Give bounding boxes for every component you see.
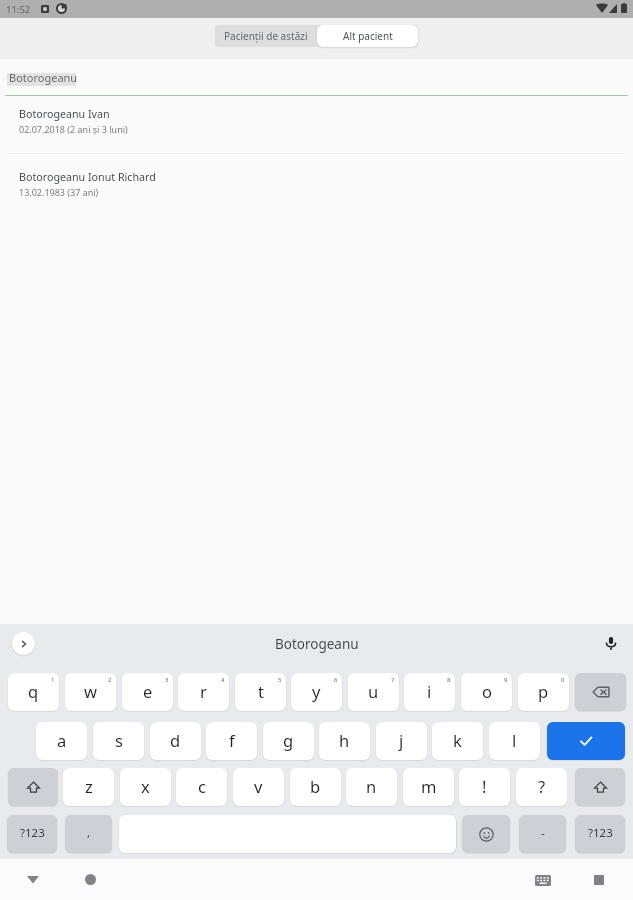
- button[interactable]: Home: [78, 867, 102, 891]
- button[interactable]: Backspace: [575, 673, 626, 711]
- staticText: j: [399, 729, 404, 751]
- staticText: v: [254, 775, 263, 797]
- staticText: 6: [334, 676, 338, 684]
- staticText: z: [85, 775, 93, 797]
- button[interactable]: i: [404, 673, 455, 711]
- staticText: 9: [504, 676, 508, 684]
- button[interactable]: g: [263, 722, 314, 760]
- staticText: Botorogeanu: [275, 635, 359, 653]
- staticText: 1: [51, 676, 55, 684]
- button[interactable]: Alt pacient: [317, 25, 418, 47]
- staticText: 3: [165, 676, 169, 684]
- staticText: -: [541, 825, 545, 841]
- button[interactable]: l: [489, 722, 540, 760]
- staticText: h: [339, 729, 350, 751]
- button[interactable]: q: [8, 673, 59, 711]
- button[interactable]: !: [459, 768, 510, 806]
- button[interactable]: Pacienții de astăzi: [215, 25, 317, 47]
- button[interactable]: Back: [21, 867, 45, 891]
- button[interactable]: w: [65, 673, 116, 711]
- staticText: 8: [447, 676, 451, 684]
- button[interactable]: Botorogeanu Ivan: [0, 100, 633, 146]
- staticText: c: [198, 775, 206, 797]
- staticText: 2: [108, 676, 112, 684]
- button[interactable]: Shift: [575, 768, 625, 806]
- button[interactable]: Botorogeanu: [9, 70, 78, 85]
- staticText: 7: [391, 676, 395, 684]
- button[interactable]: Voice input: [601, 633, 621, 653]
- staticText: Botorogeanu Ivan: [19, 107, 110, 122]
- button[interactable]: ?: [516, 768, 567, 806]
- staticText: i: [427, 680, 432, 702]
- staticText: d: [170, 729, 181, 751]
- button[interactable]: More suggestions: [12, 632, 35, 655]
- button[interactable]: Enter: [547, 722, 625, 760]
- button[interactable]: m: [403, 768, 454, 806]
- button[interactable]: z: [63, 768, 114, 806]
- staticText: w: [84, 680, 97, 702]
- button[interactable]: b: [290, 768, 341, 806]
- staticText: o: [482, 680, 492, 702]
- button[interactable]: Emoji: [462, 815, 510, 853]
- staticText: x: [141, 775, 150, 797]
- staticText: ,: [87, 825, 91, 841]
- staticText: q: [28, 680, 39, 702]
- button[interactable]: k: [432, 722, 483, 760]
- staticText: ?123: [588, 825, 613, 841]
- button[interactable]: f: [206, 722, 257, 760]
- staticText: 5: [278, 676, 282, 684]
- button[interactable]: -: [519, 815, 566, 853]
- staticText: Botorogeanu Ionut Richard: [19, 170, 156, 185]
- button[interactable]: r: [178, 673, 229, 711]
- staticText: r: [200, 680, 207, 702]
- button[interactable]: y: [291, 673, 342, 711]
- staticText: !: [482, 775, 487, 797]
- button[interactable]: s: [93, 722, 144, 760]
- staticText: Botorogeanu: [9, 70, 78, 85]
- button[interactable]: Shift: [8, 768, 58, 806]
- button[interactable]: c: [176, 768, 227, 806]
- staticText: b: [310, 775, 321, 797]
- button[interactable]: e: [122, 673, 173, 711]
- button[interactable]: p: [518, 673, 569, 711]
- staticText: 13.02.1983 (37 ani): [19, 186, 99, 198]
- button[interactable]: ?123: [7, 815, 57, 853]
- button[interactable]: t: [235, 673, 286, 711]
- staticText: l: [512, 729, 517, 751]
- staticText: y: [312, 680, 321, 702]
- button[interactable]: Change keyboard: [531, 868, 555, 892]
- button[interactable]: a: [36, 722, 87, 760]
- button[interactable]: h: [319, 722, 370, 760]
- staticText: 0: [561, 676, 565, 684]
- staticText: 11:52: [6, 3, 31, 16]
- button[interactable]: Recent apps: [587, 868, 611, 892]
- button[interactable]: ?123: [575, 815, 625, 853]
- button[interactable]: j: [376, 722, 427, 760]
- staticText: s: [115, 729, 123, 751]
- button[interactable]: v: [233, 768, 284, 806]
- staticText: g: [283, 729, 294, 751]
- staticText: f: [229, 729, 235, 751]
- staticText: u: [368, 680, 379, 702]
- staticText: n: [366, 775, 377, 797]
- staticText: e: [143, 680, 153, 702]
- staticText: 02.07.2018 (2 ani și 3 luni): [19, 123, 128, 135]
- button[interactable]: x: [120, 768, 171, 806]
- button[interactable]: o: [461, 673, 512, 711]
- staticText: ?: [538, 775, 546, 797]
- staticText: Pacienții de astăzi: [224, 29, 308, 43]
- staticText: k: [453, 729, 462, 751]
- button[interactable]: d: [150, 722, 201, 760]
- staticText: p: [538, 680, 549, 702]
- staticText: ?123: [20, 825, 45, 841]
- button[interactable]: Botorogeanu Ionut Richard: [0, 163, 633, 209]
- staticText: a: [57, 729, 67, 751]
- button[interactable]: ,: [65, 815, 112, 853]
- staticText: 4: [221, 676, 225, 684]
- staticText: m: [421, 775, 437, 797]
- button[interactable]: n: [346, 768, 397, 806]
- button[interactable]: u: [348, 673, 399, 711]
- staticText: Alt pacient: [343, 29, 393, 43]
- staticText: t: [258, 680, 264, 702]
